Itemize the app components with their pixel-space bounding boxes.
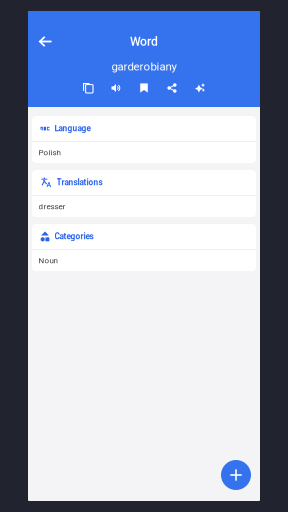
staticText: Categories: [54, 232, 93, 241]
staticText: Language: [54, 124, 90, 133]
button[interactable]: Back: [31, 27, 59, 55]
staticText: Noun: [38, 256, 57, 265]
button[interactable]: Bookmark: [137, 81, 150, 94]
button[interactable]: Copy: [81, 81, 94, 94]
staticText: Word: [130, 34, 158, 49]
button[interactable]: Suggestions: [193, 81, 206, 94]
button[interactable]: Translations: [32, 170, 256, 195]
button[interactable]: Language: [32, 116, 256, 141]
button[interactable]: Categories: [32, 224, 256, 249]
staticText: dresser: [38, 202, 65, 211]
staticText: Translations: [56, 178, 102, 187]
staticText: Polish: [38, 148, 60, 157]
button[interactable]: Add: [221, 460, 251, 490]
button[interactable]: Pronounce: [109, 81, 122, 94]
button[interactable]: Share: [165, 81, 178, 94]
staticText: garderobiany: [111, 60, 176, 73]
